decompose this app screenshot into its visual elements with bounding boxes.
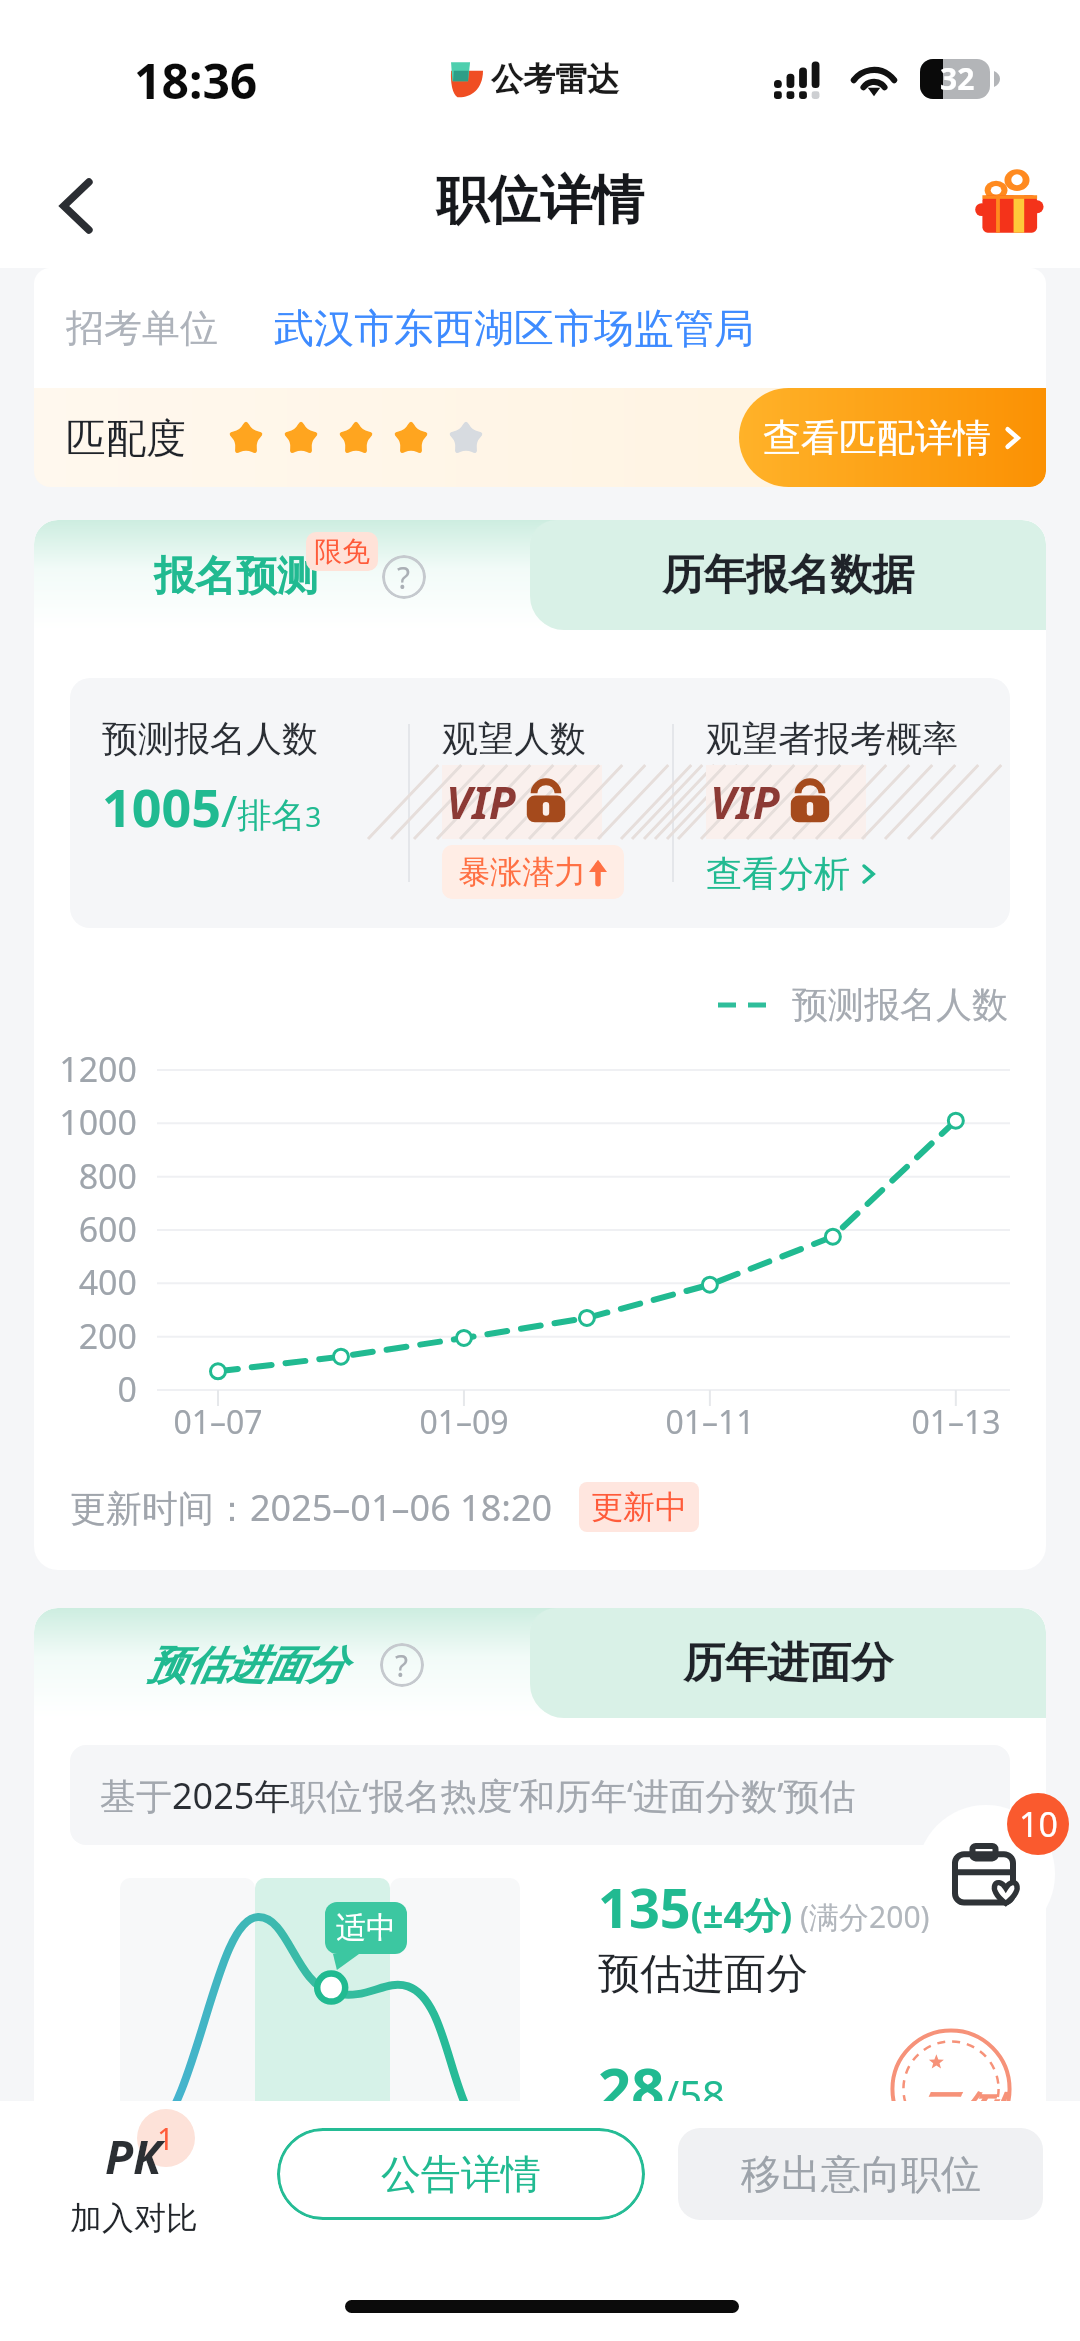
staticText: 400 xyxy=(78,1259,137,1305)
button[interactable]: 历年报名数据 xyxy=(530,520,1046,630)
staticText: 历年进面分 xyxy=(683,1637,893,1690)
staticText: ? xyxy=(397,557,411,598)
staticText: 观望者报考概率 xyxy=(706,716,958,761)
staticText: 历年报名数据 xyxy=(662,549,914,602)
staticText: VIP xyxy=(710,772,780,832)
staticText: 预测报名人数 xyxy=(102,716,318,761)
staticText: 1000 xyxy=(59,1099,137,1145)
staticText: VIP xyxy=(446,772,516,832)
staticText: 1 xyxy=(157,2118,175,2159)
staticText: 预估进面分 xyxy=(146,1640,346,1690)
staticText: 公告详情 xyxy=(381,2149,541,2199)
staticText: 移出意向职位 xyxy=(741,2149,981,2199)
staticText: 示例 xyxy=(908,2086,996,2141)
button[interactable]: 暴涨潜力 xyxy=(458,852,608,892)
button[interactable]: 移出意向职位 xyxy=(678,2128,1043,2220)
staticText: 加入对比 xyxy=(70,2198,198,2238)
staticText: 招考单位 xyxy=(66,304,218,352)
staticText: 10 xyxy=(1019,1801,1058,1847)
staticText: 查看分析 xyxy=(706,851,850,896)
staticText: 32 xyxy=(940,59,975,98)
button[interactable]: Gift xyxy=(964,156,1054,246)
staticText: 适中 xyxy=(336,1909,396,1947)
staticText: 查看匹配详情 xyxy=(763,414,991,462)
staticText: 公考雷达 xyxy=(491,59,619,99)
staticText: 更新中 xyxy=(591,1487,687,1527)
staticText: 600 xyxy=(78,1206,137,1252)
staticText: 职位详情 xyxy=(436,168,644,234)
button[interactable]: 1 xyxy=(54,2125,214,2238)
staticText: 基于2025年职位‘报名热度’和历年‘进面分数’预估 xyxy=(100,1771,856,1820)
staticText: 01–07 xyxy=(173,1400,263,1444)
staticText: ? xyxy=(395,1645,409,1686)
button[interactable]: 查看分析 xyxy=(706,851,878,896)
button[interactable]: 历年进面分 xyxy=(530,1608,1046,1718)
staticText: 预测报名人数 xyxy=(792,982,1008,1027)
staticText: 观望人数 xyxy=(442,716,586,761)
staticText: 01–13 xyxy=(911,1400,1001,1444)
button[interactable]: 查看匹配详情 xyxy=(739,388,1046,487)
staticText: PK xyxy=(105,2125,162,2188)
button[interactable] xyxy=(34,520,594,630)
staticText: 匹配度 xyxy=(66,413,186,463)
button[interactable]: My favourite jobs xyxy=(917,1805,1055,1943)
staticText: 报名预测 xyxy=(154,551,318,603)
staticText: 武汉市东西湖区市场监管局 xyxy=(274,303,754,353)
button[interactable] xyxy=(34,1608,594,1718)
staticText: 28/58 xyxy=(598,2048,725,2127)
button[interactable]: Back xyxy=(36,166,116,246)
staticText: 更新时间：2025–01–06 18:20 xyxy=(70,1483,553,1532)
staticText: 1200 xyxy=(59,1046,137,1092)
button[interactable]: 公告详情 xyxy=(277,2128,645,2220)
staticText: 限免 xyxy=(314,534,370,569)
staticText: 01–11 xyxy=(665,1400,755,1444)
staticText: 0 xyxy=(117,1366,137,1412)
staticText: 18:36 xyxy=(134,48,258,113)
staticText: 01–09 xyxy=(419,1400,509,1444)
staticText: 200 xyxy=(78,1313,137,1359)
staticText: 暴涨潜力 xyxy=(458,852,586,892)
staticText: 800 xyxy=(78,1153,137,1199)
staticText: 135(±4分) (满分200) xyxy=(598,1870,930,1944)
staticText: 预估进面分 xyxy=(598,1948,808,2001)
staticText: 1005/排名3 xyxy=(102,771,322,842)
